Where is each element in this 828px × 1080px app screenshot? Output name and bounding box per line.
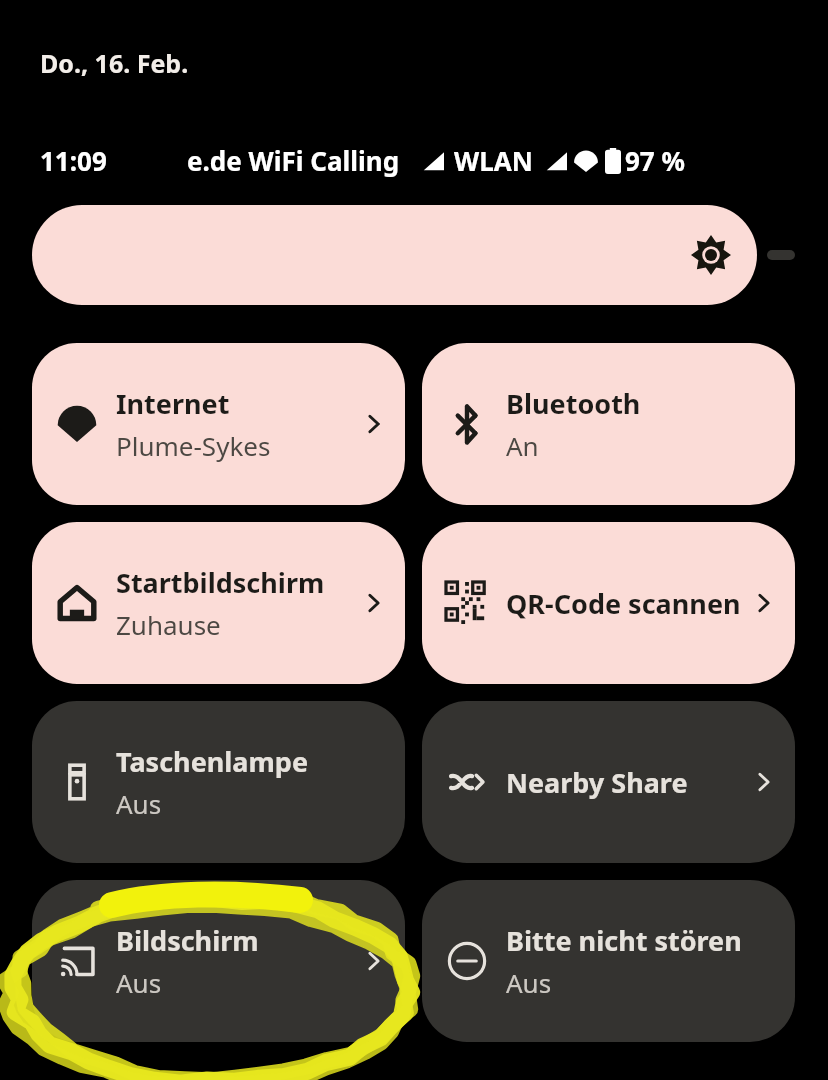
button[interactable]: Bluetooth [422,343,795,505]
staticText: Taschenlampe [116,743,309,780]
staticText: QR-Code scannen [506,585,741,622]
staticText: Aus [506,965,552,1000]
button[interactable]: Bildschirm übertragen [32,880,405,1042]
staticText: Bildschirm übertragen [116,922,355,959]
staticText: Nearby Share [506,764,688,801]
staticText: 11:09 [40,143,107,178]
staticText: Bluetooth [506,385,641,422]
button[interactable]: Startbildschirm [32,522,405,684]
staticText: Plume-Sykes [116,428,271,463]
staticText: Startbildschirm [116,564,325,601]
staticText: Internet [116,385,230,422]
button[interactable]: Taschenlampe [32,701,405,863]
staticText: Do., 16. Feb. [40,46,189,80]
staticText: WLAN [454,143,533,178]
staticText: e.de WiFi Calling [187,143,400,178]
staticText: Aus [116,786,162,821]
staticText: An [506,428,539,463]
staticText: Zuhause [116,607,221,642]
staticText: 97 % [625,143,685,178]
button[interactable]: Brightness [32,205,757,305]
button[interactable]: QR-Code scannen [422,522,795,684]
staticText: Aus [116,965,162,1000]
button[interactable]: Internet [32,343,405,505]
button[interactable]: Nearby Share [422,701,795,863]
staticText: Bitte nicht stören [506,922,742,959]
button[interactable]: Bitte nicht stören [422,880,795,1042]
